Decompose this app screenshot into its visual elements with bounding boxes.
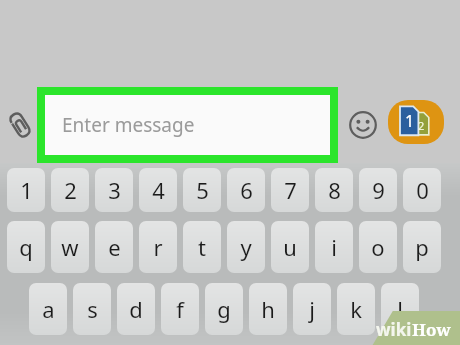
staticText: q	[19, 232, 33, 262]
button[interactable]: Select SIM card	[388, 100, 444, 144]
button[interactable]: o	[359, 221, 397, 273]
staticText: s	[87, 294, 98, 324]
staticText: i	[331, 232, 337, 262]
staticText: 8	[328, 175, 341, 205]
staticText: w	[61, 232, 79, 262]
button[interactable]: Attach file	[2, 98, 38, 152]
button[interactable]: r	[139, 221, 177, 273]
button[interactable]: q	[7, 221, 45, 273]
button[interactable]: w	[51, 221, 89, 273]
button[interactable]: d	[117, 283, 155, 335]
staticText: t	[198, 232, 206, 262]
button[interactable]: Enter message	[45, 95, 330, 155]
staticText: 4	[152, 175, 165, 205]
button[interactable]: j	[293, 283, 331, 335]
staticText: r	[153, 232, 163, 262]
staticText: p	[415, 232, 429, 262]
button[interactable]: h	[249, 283, 287, 335]
button[interactable]: i	[315, 221, 353, 273]
staticText: 1	[405, 110, 415, 132]
button[interactable]: f	[161, 283, 199, 335]
staticText: u	[283, 232, 297, 262]
staticText: o	[371, 232, 385, 262]
button[interactable]: 1	[7, 168, 45, 212]
staticText: a	[42, 294, 55, 324]
staticText: h	[261, 294, 275, 324]
staticText: wiki	[376, 318, 412, 341]
button[interactable]: g	[205, 283, 243, 335]
button[interactable]: 8	[315, 168, 353, 212]
staticText: 9	[372, 175, 385, 205]
button[interactable]: p	[403, 221, 441, 273]
button[interactable]: e	[95, 221, 133, 273]
button[interactable]: 5	[183, 168, 221, 212]
button[interactable]: 6	[227, 168, 265, 212]
staticText: f	[176, 294, 184, 324]
staticText: l	[397, 294, 403, 324]
staticText: 7	[284, 175, 297, 205]
staticText: j	[309, 294, 315, 324]
button[interactable]: u	[271, 221, 309, 273]
staticText: g	[217, 294, 231, 324]
staticText: 1	[20, 175, 33, 205]
button[interactable]: 0	[403, 168, 441, 212]
button[interactable]: y	[227, 221, 265, 273]
button[interactable]: 3	[95, 168, 133, 212]
staticText: Enter message	[62, 112, 195, 138]
button[interactable]: 2	[51, 168, 89, 212]
staticText: 0	[416, 175, 429, 205]
staticText: e	[108, 232, 121, 262]
button[interactable]: k	[337, 283, 375, 335]
button[interactable]: 7	[271, 168, 309, 212]
staticText: y	[240, 232, 252, 262]
button[interactable]: t	[183, 221, 221, 273]
button[interactable]: 9	[359, 168, 397, 212]
staticText: 3	[108, 175, 121, 205]
staticText: d	[129, 294, 143, 324]
staticText: 6	[240, 175, 253, 205]
staticText: k	[350, 294, 362, 324]
button[interactable]: s	[73, 283, 111, 335]
staticText: How	[412, 318, 451, 341]
staticText: 5	[196, 175, 209, 205]
staticText: 2	[418, 118, 425, 133]
button[interactable]: Emoji	[343, 105, 383, 145]
button[interactable]: a	[29, 283, 67, 335]
button[interactable]: 4	[139, 168, 177, 212]
staticText: 2	[64, 175, 77, 205]
button[interactable]: l	[381, 283, 419, 335]
